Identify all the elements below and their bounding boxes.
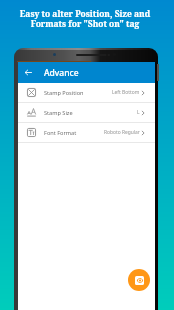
- staticText: Stamp Position: [44, 89, 112, 97]
- staticText: Stamp Size: [44, 109, 137, 117]
- button[interactable]: Back: [18, 62, 39, 83]
- staticText: Easy to alter Position, Size and Formats…: [0, 8, 170, 30]
- staticText: Roboto Regular: [104, 129, 140, 136]
- button[interactable]: Font Format: [18, 123, 155, 142]
- button[interactable]: Stamp Size: [18, 103, 155, 122]
- staticText: Advance: [44, 67, 79, 79]
- button[interactable]: Stamp Position: [18, 83, 155, 102]
- staticText: Left Bottom: [112, 89, 140, 96]
- staticText: L: [137, 109, 140, 116]
- staticText: Font Format: [44, 129, 104, 137]
- button[interactable]: Preview: [128, 269, 150, 291]
